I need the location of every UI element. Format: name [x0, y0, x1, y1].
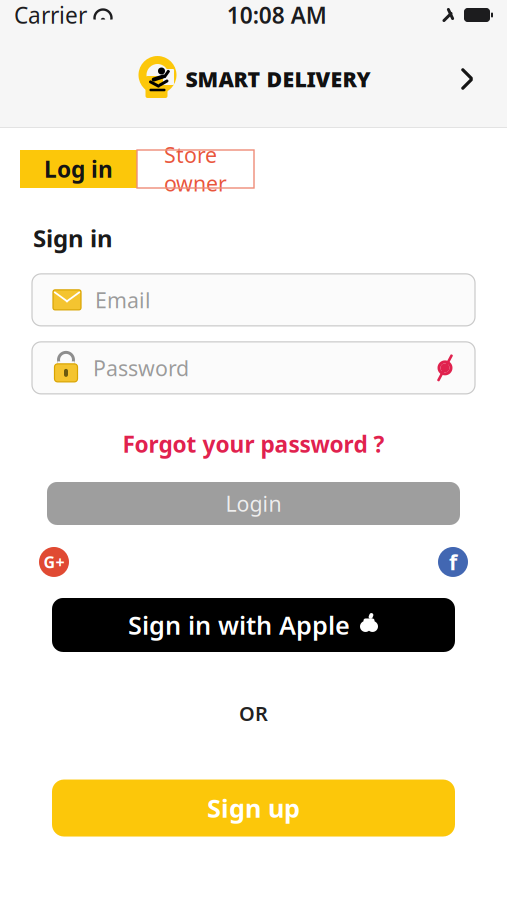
- button[interactable]: Sign up: [52, 779, 455, 836]
- staticText: OR: [239, 700, 268, 727]
- staticText: SMART DELIVERY: [185, 65, 370, 93]
- staticText: G+: [43, 551, 64, 572]
- button[interactable]: Store owner: [137, 150, 254, 188]
- button[interactable]: Forgot your password ?: [112, 421, 394, 467]
- button[interactable]: Sign in with Apple: [52, 598, 455, 652]
- button[interactable]: Back: [445, 57, 489, 101]
- button[interactable]: Show password: [423, 346, 467, 390]
- button[interactable]: Sign in with Facebook: [435, 544, 471, 580]
- staticText: Login: [225, 489, 281, 518]
- button[interactable]: Login: [47, 482, 460, 525]
- staticText: Sign up: [207, 791, 300, 825]
- staticText: f: [449, 548, 457, 576]
- button[interactable]: Sign in with Google: [36, 544, 72, 580]
- button[interactable]: Log in: [20, 150, 137, 188]
- staticText: Log in: [44, 154, 113, 184]
- staticText: Email: [95, 286, 151, 314]
- staticText: 10:08 AM: [227, 0, 327, 30]
- staticText: Sign in with Apple: [128, 608, 350, 642]
- staticText: Password: [93, 354, 189, 382]
- staticText: Carrier: [14, 0, 87, 30]
- staticText: Forgot your password ?: [122, 429, 384, 459]
- staticText: Store owner: [164, 141, 227, 197]
- staticText: Sign in: [33, 222, 113, 254]
